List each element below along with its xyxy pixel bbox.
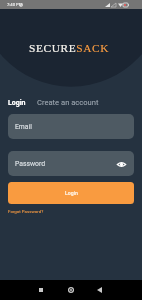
staticText: Forgot Password? [8,209,44,214]
staticText: SECURESACK [29,42,110,55]
button[interactable]: Recent apps [30,280,51,300]
staticText: Password [15,160,46,168]
staticText: Login [8,99,26,107]
staticText: 7:40 PM [7,2,23,7]
button[interactable]: Forgot Password? [8,209,44,214]
button[interactable]: Show password [114,157,128,171]
button[interactable]: Create an account [37,98,99,107]
staticText: Login [65,190,78,196]
button[interactable]: Back [89,280,110,300]
button[interactable]: Login [8,99,26,107]
button[interactable]: Password [8,151,134,176]
staticText: Email [15,123,32,131]
button[interactable]: Login [8,182,134,204]
staticText: Create an account [37,98,99,107]
button[interactable]: Email [8,114,134,139]
button[interactable]: Home [60,280,81,300]
